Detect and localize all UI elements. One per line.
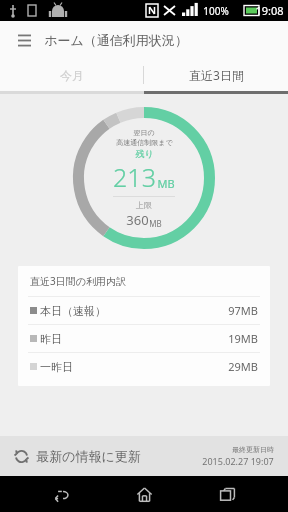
button[interactable]: 直近3日間 xyxy=(144,59,288,91)
button[interactable]: 昨日 xyxy=(18,325,270,352)
staticText: 高速通信制限まで xyxy=(116,138,173,147)
staticText: 最新の情報に更新 xyxy=(36,448,141,464)
staticText: 最終更新日時 xyxy=(232,445,274,454)
staticText: 29MB xyxy=(228,359,258,374)
staticText: MB xyxy=(149,218,162,229)
staticText: 100% xyxy=(203,4,229,18)
staticText: 上限 xyxy=(136,200,152,210)
staticText: 昨日 xyxy=(40,332,62,346)
staticText: 19MB xyxy=(228,331,258,346)
staticText: 残り xyxy=(135,148,154,159)
button[interactable]: 本日（速報） xyxy=(18,297,270,324)
button[interactable]: Recent apps xyxy=(205,476,249,512)
staticText: ホーム（通信利用状況） xyxy=(44,32,188,48)
staticText: 一昨日 xyxy=(40,360,73,374)
button[interactable]: 今月 xyxy=(0,59,143,91)
staticText: 97MB xyxy=(228,303,258,318)
staticText: 直近3日間 xyxy=(189,67,244,83)
staticText: 2015.02.27 19:07 xyxy=(202,455,274,467)
button[interactable]: 最新の情報に更新 xyxy=(0,436,288,476)
staticText: 360 xyxy=(126,211,149,229)
button[interactable]: Menu xyxy=(10,26,38,54)
staticText: 213 xyxy=(113,160,156,194)
staticText: 直近3日間の利用内訳 xyxy=(30,274,126,288)
staticText: 19:08 xyxy=(255,3,284,18)
staticText: 本日（速報） xyxy=(40,304,106,318)
staticText: MB xyxy=(157,176,175,191)
button[interactable]: Back xyxy=(39,476,83,512)
button[interactable]: 一昨日 xyxy=(18,353,270,380)
staticText: 翌日の xyxy=(133,128,155,137)
staticText: 今月 xyxy=(60,68,84,83)
button[interactable]: Home xyxy=(122,476,166,512)
